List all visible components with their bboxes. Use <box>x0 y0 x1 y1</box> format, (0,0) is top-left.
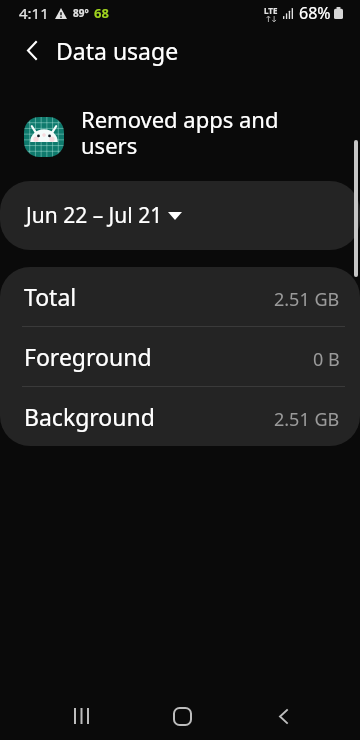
button[interactable]: Navigate up <box>13 31 51 69</box>
button[interactable]: Back <box>259 692 307 740</box>
staticText: Background <box>24 401 155 432</box>
staticText: 68 <box>94 4 109 22</box>
staticText: LTE <box>264 5 278 16</box>
button[interactable]: Background <box>0 387 360 446</box>
button[interactable]: Total <box>0 267 360 326</box>
button[interactable]: Jun 22 – Jul 21 <box>0 181 360 250</box>
staticText: 2.51 GB <box>274 407 340 432</box>
staticText: Removed apps and users <box>81 104 302 161</box>
staticText: Foreground <box>24 341 152 372</box>
button[interactable]: Foreground <box>0 327 360 386</box>
staticText: 68% <box>299 2 331 24</box>
staticText: Total <box>24 281 77 312</box>
staticText: 0 B <box>313 347 340 372</box>
button[interactable]: Home <box>158 692 206 740</box>
staticText: 2.51 GB <box>274 287 340 312</box>
button[interactable]: Recent apps <box>57 692 105 740</box>
staticText: 89° <box>73 6 89 20</box>
staticText: Jun 22 – Jul 21 <box>26 201 163 230</box>
staticText: Data usage <box>56 35 179 66</box>
staticText: 4:11 <box>19 3 49 23</box>
